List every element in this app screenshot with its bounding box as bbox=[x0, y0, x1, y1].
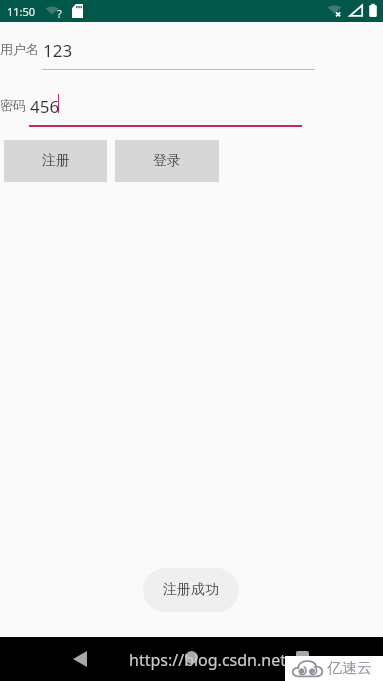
staticText: 登录 bbox=[153, 152, 181, 170]
staticText: 密码 bbox=[0, 97, 26, 113]
button[interactable]: Back bbox=[66, 645, 94, 673]
staticText: ? bbox=[57, 6, 62, 21]
button[interactable]: 登录 bbox=[115, 140, 219, 182]
button[interactable]: 注册 bbox=[4, 140, 107, 182]
button[interactable]: Home bbox=[177, 643, 205, 671]
staticText: 456 bbox=[30, 95, 60, 118]
staticText: 11:50 bbox=[7, 4, 36, 19]
staticText: 123 bbox=[43, 39, 73, 62]
staticText: 亿速云 bbox=[327, 659, 372, 678]
staticText: https://blog.csdn.net bbox=[129, 649, 286, 671]
staticText: 注册成功 bbox=[163, 581, 219, 599]
staticText: 注册 bbox=[42, 152, 70, 170]
staticText: 用户名 bbox=[0, 41, 39, 57]
button[interactable]: Recents bbox=[288, 643, 316, 671]
